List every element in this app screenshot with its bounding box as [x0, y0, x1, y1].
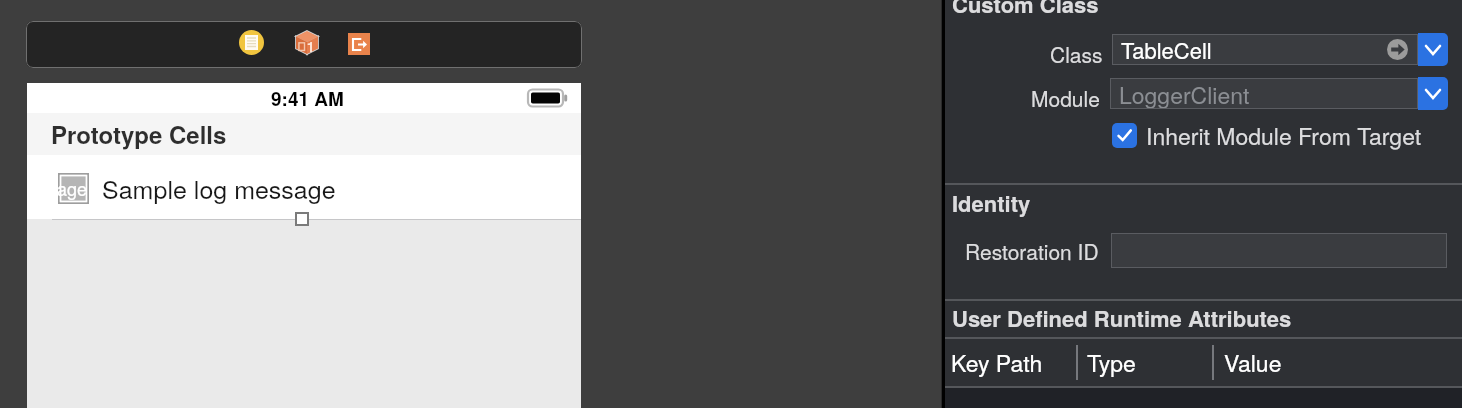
staticText: Module [1031, 83, 1100, 113]
button[interactable]: LoggerClient [1110, 78, 1418, 109]
staticText: Custom Class [952, 0, 1099, 20]
button[interactable]: Show options [1418, 77, 1448, 110]
staticText: Inherit Module From Target [1146, 119, 1422, 152]
staticText: Key Path [951, 346, 1043, 379]
staticText: Type [1087, 346, 1136, 379]
staticText: Class [1050, 39, 1103, 69]
staticText: TableCell [1121, 34, 1212, 65]
button[interactable]: Open class in editor [1387, 39, 1408, 60]
button[interactable]: Show options [1418, 33, 1448, 66]
staticText: User Defined Runtime Attributes [952, 302, 1292, 334]
staticText: image [38, 175, 88, 201]
staticText: Identity [952, 187, 1031, 219]
staticText: 1 [307, 37, 315, 56]
staticText: Restoration ID [965, 236, 1099, 266]
button[interactable]: TableCell [1112, 34, 1418, 65]
button[interactable]: View Controller scene [294, 30, 319, 55]
button[interactable]: Exit [348, 33, 370, 55]
button[interactable]: Inherit Module From Target [1112, 119, 1422, 152]
staticText: LoggerClient [1119, 78, 1250, 109]
button[interactable]: image [27, 155, 581, 219]
staticText: 9:41 AM [271, 85, 344, 112]
staticText: Sample log message [102, 170, 336, 206]
staticText: Prototype Cells [51, 117, 227, 151]
button[interactable] [1111, 233, 1447, 268]
staticText: Value [1224, 346, 1282, 379]
button[interactable]: First Responder [239, 30, 264, 55]
